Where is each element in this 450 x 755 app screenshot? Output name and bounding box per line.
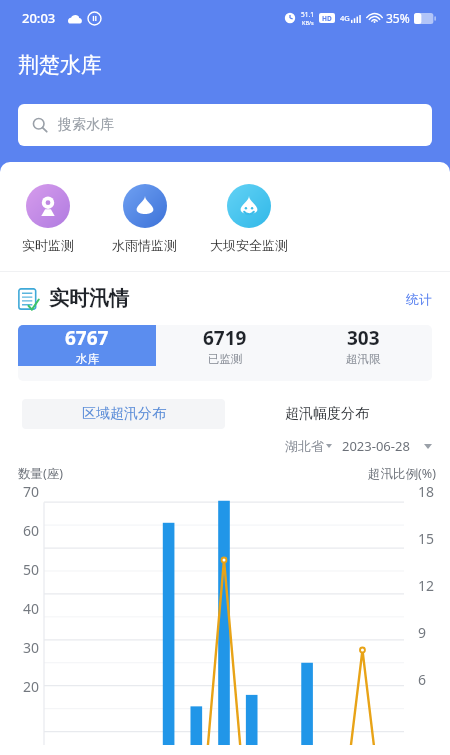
- button[interactable]: 搜索水库: [18, 104, 432, 146]
- staticText: KB/s: [302, 19, 314, 26]
- button[interactable]: 统计: [406, 291, 432, 307]
- staticText: 18: [418, 482, 435, 501]
- staticText: 大坝安全监测: [210, 237, 288, 253]
- staticText: 40: [23, 599, 40, 618]
- staticText: 9: [418, 623, 427, 642]
- staticText: 20: [23, 677, 40, 696]
- staticText: 50: [23, 560, 40, 579]
- staticText: 303: [347, 325, 380, 351]
- staticText: HD: [322, 14, 332, 23]
- staticText: 2023-06-28: [342, 437, 410, 455]
- button[interactable]: 2023-06-28: [342, 437, 410, 455]
- button[interactable]: 大坝安全监测: [210, 184, 288, 253]
- staticText: 15: [418, 529, 435, 548]
- staticText: 12: [418, 576, 435, 595]
- button[interactable]: 超汛幅度分布: [225, 399, 428, 429]
- staticText: 30: [23, 638, 40, 657]
- staticText: 区域超汛分布: [82, 405, 166, 423]
- button[interactable]: 水雨情监测: [112, 184, 177, 253]
- button[interactable]: 6767: [18, 325, 156, 366]
- staticText: 超汛幅度分布: [285, 405, 369, 423]
- button[interactable]: 实时监测: [22, 184, 74, 253]
- button[interactable]: Expand filters: [424, 444, 432, 449]
- button[interactable]: 6719: [156, 325, 294, 366]
- staticText: 已监测: [208, 352, 243, 366]
- staticText: 湖北省: [285, 438, 324, 454]
- button[interactable]: 湖北省: [285, 438, 332, 454]
- staticText: 超汛限: [346, 352, 381, 366]
- staticText: 实时汛情: [49, 286, 129, 311]
- staticText: 水雨情监测: [112, 237, 177, 253]
- button[interactable]: 区域超汛分布: [22, 399, 225, 429]
- staticText: 6719: [203, 325, 247, 351]
- staticText: 荆楚水库: [18, 52, 102, 78]
- staticText: 超汛比例(%): [368, 465, 436, 482]
- staticText: 6: [418, 670, 427, 689]
- staticText: 20:03: [22, 9, 56, 27]
- staticText: 4G: [340, 13, 350, 23]
- staticText: 水库: [76, 352, 99, 366]
- staticText: 60: [23, 521, 40, 540]
- staticText: 数量(座): [18, 465, 64, 482]
- staticText: 实时监测: [22, 237, 74, 253]
- staticText: 70: [23, 482, 40, 501]
- staticText: 35%: [386, 10, 410, 26]
- button[interactable]: 303: [294, 325, 432, 366]
- staticText: 6767: [65, 325, 109, 351]
- staticText: 搜索水库: [58, 116, 114, 134]
- staticText: 51.1: [301, 10, 314, 19]
- staticText: 统计: [406, 291, 432, 307]
